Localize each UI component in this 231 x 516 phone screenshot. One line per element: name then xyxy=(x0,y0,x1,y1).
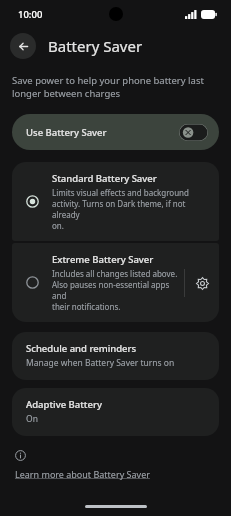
button[interactable]: Use Battery Saver xyxy=(12,114,219,150)
button[interactable]: Back xyxy=(10,33,36,59)
button[interactable]: Extreme Battery Saver settings xyxy=(185,266,219,300)
staticText: Save power to help your phone battery la… xyxy=(12,74,204,100)
staticText: Manage when Battery Saver turns on xyxy=(26,357,175,369)
button[interactable]: Standard Battery Saver xyxy=(12,162,219,241)
staticText: 10:00 xyxy=(18,8,43,21)
button[interactable]: Use Battery Saver toggle xyxy=(179,124,208,141)
staticText: Limits visual effects and background act… xyxy=(52,187,209,231)
staticText: Battery Saver xyxy=(48,36,143,56)
button[interactable]: Adaptive Battery xyxy=(12,388,219,436)
other: Information xyxy=(15,450,26,461)
staticText: Use Battery Saver xyxy=(26,126,179,139)
button[interactable]: Learn more about Battery Saver xyxy=(15,468,150,480)
staticText: Schedule and reminders xyxy=(26,342,137,355)
staticText: Extreme Battery Saver xyxy=(52,253,154,266)
staticText: On xyxy=(26,413,38,425)
staticText: Adaptive Battery xyxy=(26,398,102,411)
button[interactable]: Extreme Battery Saver xyxy=(12,243,219,322)
button[interactable]: Schedule and reminders xyxy=(12,332,219,380)
staticText: Learn more about Battery Saver xyxy=(15,468,150,480)
staticText: Standard Battery Saver xyxy=(52,172,157,185)
staticText: Includes all changes listed above. Also … xyxy=(52,268,184,312)
